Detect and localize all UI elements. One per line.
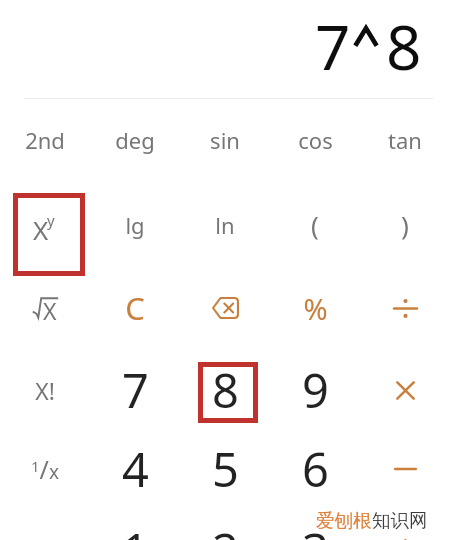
staticText: % [303,289,328,328]
button[interactable]: 5 [180,428,270,510]
staticText: 2nd [25,125,65,155]
staticText: 知识网 [372,509,428,532]
button[interactable]: cosine [270,99,360,181]
button[interactable]: x to the power y [0,183,90,265]
button[interactable]: 9 [270,349,360,431]
staticText: deg [115,125,155,155]
button[interactable]: log base 10 [90,183,180,265]
button[interactable]: square root [0,267,90,349]
staticText: 8 [386,4,422,88]
staticText: lg [125,210,145,240]
button[interactable]: 2 [180,509,270,540]
staticText: 9 [302,358,329,422]
button[interactable]: percent [270,267,360,349]
staticText: 2 [212,518,239,540]
button[interactable]: 6 [270,428,360,510]
staticText: ( [311,207,319,242]
staticText: ) [401,207,409,242]
button[interactable]: one over x [0,428,90,510]
staticText: sin [210,125,240,155]
staticText: ln [215,210,235,240]
button[interactable]: tangent [360,99,450,181]
button[interactable]: natural log [180,183,270,265]
button[interactable]: factorial [0,349,90,431]
button[interactable]: close parenthesis [360,183,450,265]
staticText: 6 [302,437,329,501]
button[interactable]: plus [360,509,450,540]
staticText: X [33,212,49,247]
staticText: 7 [122,358,149,422]
button[interactable]: sine [180,99,270,181]
staticText: 1/x [31,452,59,486]
staticText: C [125,287,145,329]
staticText: 7 [315,4,351,88]
button[interactable]: open parenthesis [270,183,360,265]
staticText: X [43,295,57,326]
button[interactable]: 7 [90,349,180,431]
staticText: 8 [212,358,239,422]
button[interactable]: 2nd [0,99,90,181]
staticText: 爱刨根 [316,509,372,532]
button[interactable]: backspace [180,267,270,349]
staticText: cos [298,125,333,155]
button[interactable]: clear [90,267,180,349]
button[interactable]: 1 [90,509,180,540]
staticText: X! [35,375,55,406]
button[interactable]: 4 [90,428,180,510]
staticText: 1 [122,518,149,540]
button[interactable]: minus [360,428,450,510]
staticText: tan [388,125,422,155]
button[interactable]: multiply [360,349,450,431]
staticText: y [47,210,55,230]
button[interactable]: 8 [180,349,270,431]
button[interactable]: 3 [270,509,360,540]
staticText: 3 [302,518,329,540]
staticText: 5 [212,437,239,501]
button[interactable]: divide [360,267,450,349]
staticText: 4 [122,437,149,501]
button[interactable]: degrees [90,99,180,181]
